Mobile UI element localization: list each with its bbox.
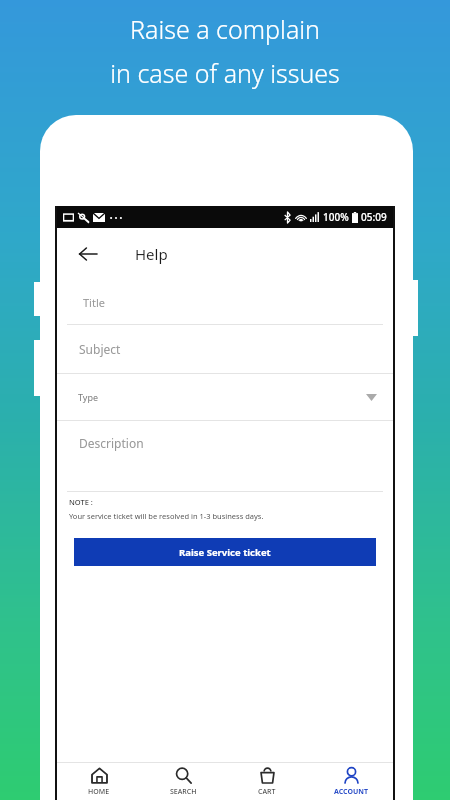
staticText: ACCOUNT <box>334 787 368 797</box>
button[interactable]: Raise Service ticket <box>74 538 376 566</box>
staticText: HOME <box>88 787 110 797</box>
button[interactable]: HOME <box>57 763 141 800</box>
staticText: NOTE : <box>69 497 93 507</box>
staticText: Help <box>135 244 168 264</box>
staticText: 05:09 <box>361 210 387 224</box>
button[interactable]: Subject <box>57 325 393 373</box>
button[interactable]: Back <box>71 237 105 271</box>
staticText: Description <box>79 435 144 451</box>
staticText: SEARCH <box>170 787 197 797</box>
staticText: Raise a complain <box>130 12 320 46</box>
button[interactable]: CART <box>225 763 309 800</box>
staticText: CART <box>258 787 276 797</box>
staticText: in case of any issues <box>110 56 340 90</box>
button[interactable]: Type <box>57 374 393 420</box>
button[interactable]: Description <box>57 421 393 491</box>
button[interactable]: SEARCH <box>141 763 225 800</box>
button[interactable]: ACCOUNT <box>309 763 393 800</box>
staticText: Your service ticket will be resolved in … <box>69 511 264 521</box>
staticText: Type <box>78 391 99 403</box>
staticText: 100% <box>323 210 349 224</box>
staticText: Title <box>83 295 105 310</box>
button[interactable]: Title <box>57 280 393 324</box>
staticText: Subject <box>79 341 121 357</box>
staticText: Raise Service ticket <box>179 546 271 559</box>
